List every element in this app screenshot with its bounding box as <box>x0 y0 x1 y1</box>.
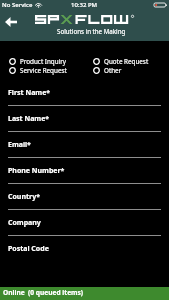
staticText: Online (0 queued items) <box>3 288 84 297</box>
staticText: 10:32 PM <box>71 1 98 9</box>
staticText: Postal Code <box>8 244 49 254</box>
staticText: Other <box>104 66 122 75</box>
staticText: Solutions in the Making <box>57 27 126 35</box>
button[interactable]: Online (0 queued items) <box>0 287 169 300</box>
button[interactable]: Back <box>1 12 20 31</box>
staticText: Quote Request <box>104 57 149 66</box>
button[interactable]: Other <box>84 66 169 75</box>
button[interactable]: Email* <box>0 137 169 163</box>
staticText: No Service <box>2 1 33 9</box>
staticText: Service Request <box>20 66 67 75</box>
button[interactable]: Company <box>0 215 169 241</box>
button[interactable]: Last Name* <box>0 111 169 137</box>
staticText: First Name* <box>8 88 51 98</box>
staticText: Country* <box>8 192 40 202</box>
button[interactable]: Quote Request <box>84 57 169 66</box>
button[interactable]: Country* <box>0 189 169 215</box>
button[interactable]: Phone Number* <box>0 163 169 189</box>
staticText: Last Name* <box>8 114 50 124</box>
button[interactable]: Service Request <box>0 66 84 75</box>
staticText: Email* <box>8 140 31 150</box>
button[interactable]: Postal Code <box>0 241 169 267</box>
staticText: Phone Number* <box>8 166 65 176</box>
staticText: Product Inquiry <box>20 57 67 66</box>
button[interactable]: Product Inquiry <box>0 57 84 66</box>
staticText: Company <box>8 218 41 228</box>
button[interactable]: First Name* <box>0 85 169 111</box>
